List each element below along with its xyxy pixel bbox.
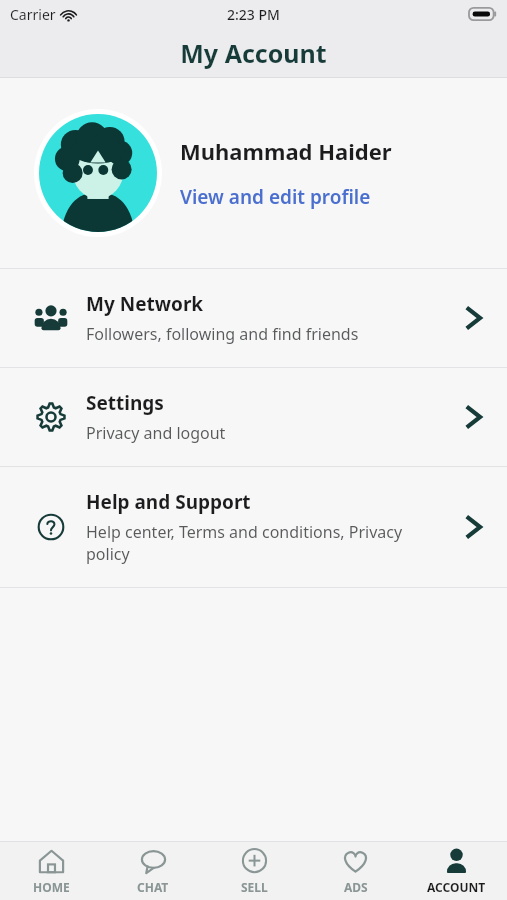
button[interactable]: Chat <box>102 842 204 900</box>
staticText: Help and Support <box>86 489 251 515</box>
staticText: Settings <box>86 390 164 416</box>
button[interactable]: Muhammad Haider <box>0 78 507 268</box>
button[interactable]: Sell <box>204 842 305 900</box>
other: Chat <box>139 847 168 876</box>
button[interactable]: Ads <box>305 842 406 900</box>
staticText: SELL <box>241 879 268 895</box>
button[interactable]: Home <box>0 842 102 900</box>
button[interactable]: Settings <box>0 368 507 466</box>
staticText: Muhammad Haider <box>180 136 392 166</box>
other: Sell <box>240 847 269 876</box>
staticText: 2:23 PM <box>227 5 280 24</box>
button[interactable]: Account <box>406 842 507 900</box>
other: Home <box>37 847 66 876</box>
staticText: My Account <box>180 36 327 70</box>
button[interactable]: My Network <box>0 269 507 367</box>
staticText: View and edit profile <box>180 184 371 210</box>
staticText: CHAT <box>137 879 169 895</box>
other: My Network <box>457 301 491 335</box>
staticText: HOME <box>33 879 70 895</box>
staticText: My Network <box>86 291 204 317</box>
other: Ads <box>341 847 370 876</box>
staticText: ADS <box>344 879 368 895</box>
staticText: Help center, Terms and conditions, Priva… <box>86 521 443 565</box>
other: Account <box>442 847 471 876</box>
staticText: Privacy and logout <box>86 422 226 444</box>
staticText: Carrier <box>10 5 56 24</box>
button[interactable]: Help and Support <box>0 467 507 587</box>
other: Settings <box>457 400 491 434</box>
other: Help and Support <box>457 510 491 544</box>
staticText: ACCOUNT <box>427 879 486 895</box>
staticText: Followers, following and find friends <box>86 323 359 345</box>
